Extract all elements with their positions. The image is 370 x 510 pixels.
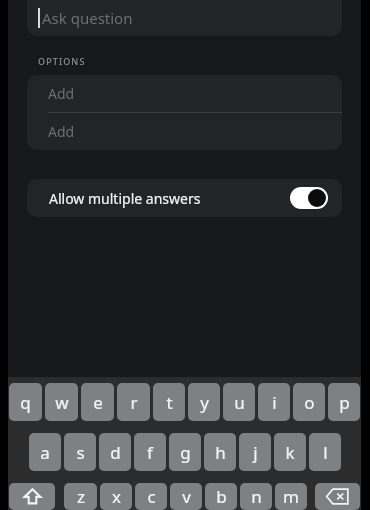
staticText: x [112,485,121,508]
button[interactable]: Ask question [27,0,342,36]
staticText: z [77,485,85,508]
button[interactable]: g [169,433,201,471]
button[interactable]: m [275,483,307,510]
button[interactable]: k [274,433,306,471]
staticText: i [272,391,277,414]
button[interactable]: u [223,383,255,421]
staticText: d [110,441,121,464]
button[interactable]: p [328,383,360,421]
staticText: g [180,441,191,464]
staticText: p [339,391,350,414]
button[interactable]: s [64,433,96,471]
staticText: u [234,391,245,414]
button[interactable]: l [309,433,341,471]
button[interactable]: q [9,383,42,421]
staticText: m [283,485,299,508]
staticText: h [215,441,226,464]
staticText: n [251,485,262,508]
button[interactable]: z [64,483,97,510]
button[interactable]: f [134,433,166,471]
button[interactable]: t [153,383,185,421]
button[interactable]: e [81,383,114,421]
staticText: r [130,391,138,414]
button[interactable]: a [29,433,61,471]
button[interactable]: y [188,383,220,421]
staticText: l [323,441,328,464]
button[interactable]: c [135,483,167,510]
staticText: Ask question [42,8,133,28]
button[interactable]: Backspace [315,483,360,510]
staticText: s [76,441,85,464]
staticText: k [285,441,295,464]
button[interactable]: Add [27,75,342,112]
button[interactable]: h [204,433,236,471]
button[interactable]: w [45,383,78,421]
staticText: w [55,391,69,414]
staticText: Allow multiple answers [49,189,201,208]
staticText: j [253,441,258,464]
staticText: y [200,391,209,414]
staticText: v [182,485,191,508]
staticText: a [40,441,50,464]
button[interactable]: Allow multiple answers [27,179,342,217]
button[interactable]: i [258,383,290,421]
staticText: t [166,391,173,414]
staticText: OPTIONS [38,55,86,67]
button[interactable]: Add [27,113,342,150]
staticText: q [20,391,31,414]
staticText: Add [48,84,75,103]
staticText: c [147,485,156,508]
button[interactable]: o [293,383,325,421]
button[interactable]: Allow multiple answers toggle [290,187,328,209]
staticText: f [147,441,153,464]
button[interactable]: n [240,483,272,510]
button[interactable]: d [99,433,131,471]
button[interactable]: x [100,483,132,510]
button[interactable]: v [170,483,202,510]
staticText: b [216,485,227,508]
button[interactable]: j [239,433,271,471]
button[interactable]: b [205,483,237,510]
staticText: o [304,391,315,414]
button[interactable]: Shift [9,483,55,510]
staticText: e [93,391,103,414]
button[interactable]: r [117,383,150,421]
staticText: Add [48,122,75,141]
